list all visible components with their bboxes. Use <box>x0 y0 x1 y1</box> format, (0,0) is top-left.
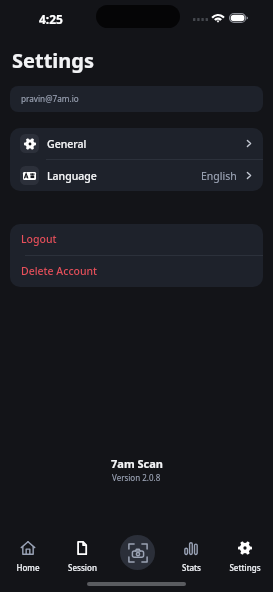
staticText: Delete Account <box>21 264 98 278</box>
button[interactable]: Language <box>10 160 263 191</box>
button[interactable]: Session <box>56 532 108 573</box>
button[interactable]: Stats <box>165 532 217 573</box>
button[interactable]: General <box>10 128 263 159</box>
staticText: Session <box>68 562 97 573</box>
staticText: Settings <box>12 47 94 74</box>
staticText: pravin@7am.io <box>21 93 79 104</box>
staticText: English <box>201 169 237 183</box>
button[interactable]: Settings <box>219 532 271 573</box>
staticText: General <box>47 137 87 151</box>
staticText: Logout <box>21 232 57 246</box>
button[interactable]: Scan <box>120 535 155 570</box>
staticText: Settings <box>229 562 261 573</box>
staticText: Language <box>47 169 97 183</box>
staticText: Version 2.0.8 <box>112 472 161 483</box>
staticText: Home <box>16 562 40 573</box>
button[interactable]: Logout <box>10 224 263 255</box>
staticText: 4:25 <box>39 11 63 27</box>
button[interactable]: pravin@7am.io <box>10 86 263 112</box>
staticText: Stats <box>182 562 201 573</box>
staticText: 7am Scan <box>111 456 163 471</box>
button[interactable]: Delete Account <box>10 256 263 287</box>
button[interactable]: Home <box>2 532 54 573</box>
